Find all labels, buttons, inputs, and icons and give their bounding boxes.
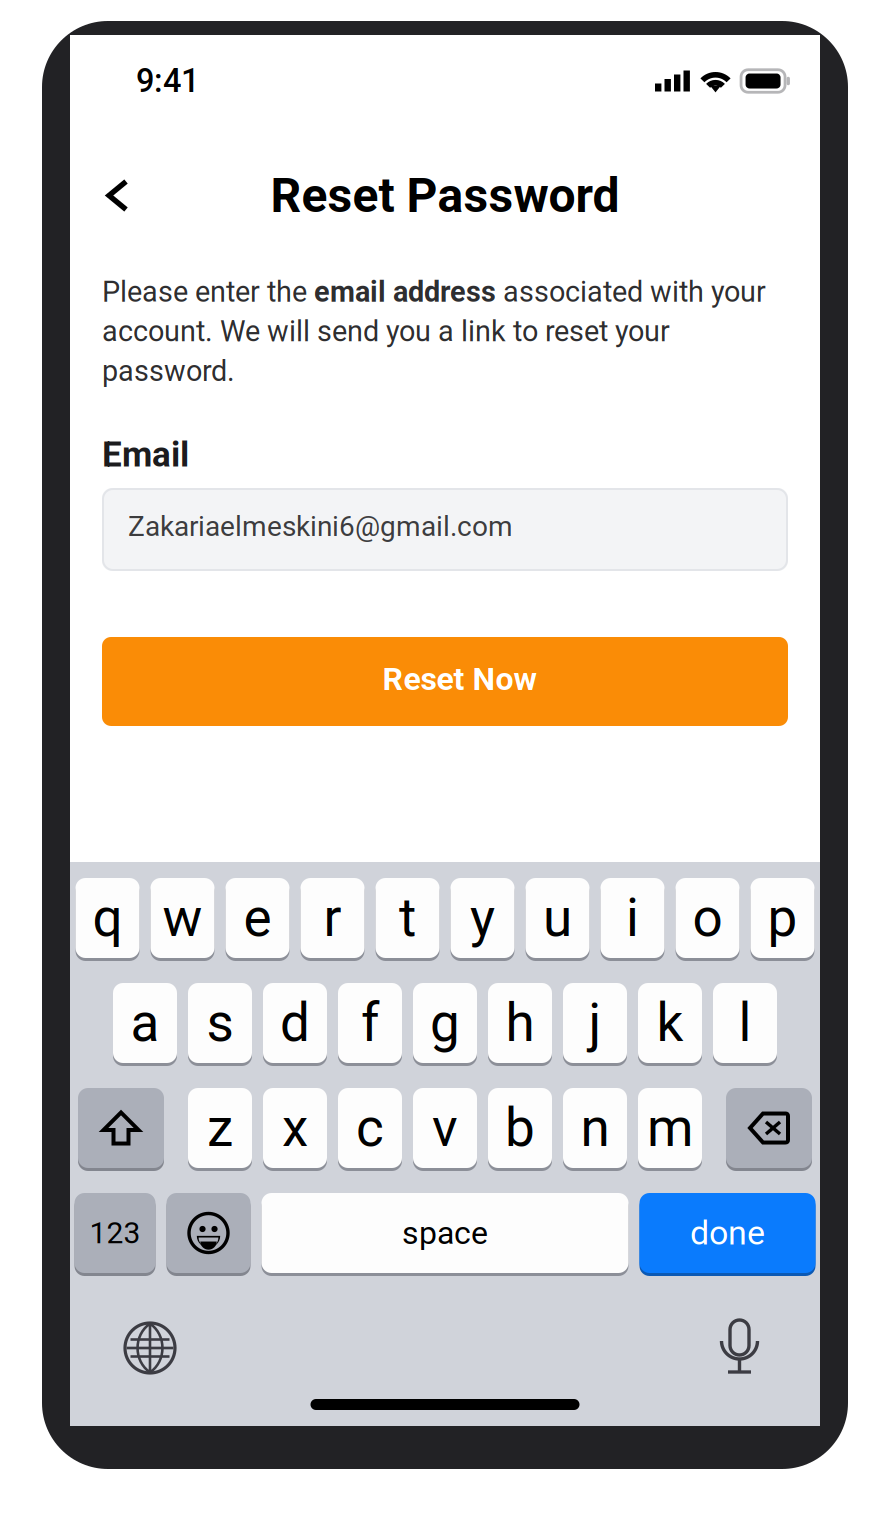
staticText: h [505, 992, 534, 1054]
button[interactable]: o [675, 878, 739, 961]
staticText: s [206, 992, 233, 1054]
staticText: k [656, 992, 683, 1054]
staticText: i [626, 887, 639, 949]
button[interactable]: u [525, 878, 589, 961]
staticText: l [738, 992, 751, 1054]
staticText: j [588, 992, 601, 1054]
staticText: b [505, 1097, 535, 1159]
staticText: y [470, 887, 495, 949]
staticText: Reset Password [270, 167, 619, 224]
staticText: z [207, 1097, 233, 1159]
button[interactable]: Back [70, 155, 151, 235]
staticText: Email [102, 434, 189, 475]
button[interactable]: j [563, 983, 627, 1066]
staticText: q [92, 887, 122, 949]
staticText: p [767, 887, 797, 949]
button[interactable]: h [488, 983, 552, 1066]
staticText: t [399, 887, 416, 949]
staticText: Please enter the email address associate… [102, 272, 766, 391]
button[interactable]: space [261, 1193, 628, 1276]
button[interactable]: b [488, 1088, 552, 1171]
staticText: m [647, 1097, 693, 1159]
staticText: done [690, 1213, 765, 1253]
staticText: w [162, 887, 202, 949]
button[interactable]: l [713, 983, 777, 1066]
button[interactable]: r [300, 878, 364, 961]
button[interactable]: Emoji keyboard [166, 1193, 250, 1276]
button[interactable]: i [600, 878, 664, 961]
button[interactable]: Reset Now [102, 637, 788, 726]
staticText: a [130, 992, 159, 1054]
button[interactable]: p [750, 878, 814, 961]
staticText: f [361, 992, 379, 1054]
staticText: n [580, 1097, 609, 1159]
button[interactable]: c [338, 1088, 402, 1171]
staticText: 123 [89, 1215, 140, 1251]
staticText: Reset Now [382, 660, 537, 698]
button[interactable]: k [638, 983, 702, 1066]
button[interactable]: m [638, 1088, 702, 1171]
button[interactable]: a [113, 983, 177, 1066]
staticText: g [430, 992, 460, 1054]
button[interactable]: v [413, 1088, 477, 1171]
button[interactable]: q [75, 878, 139, 961]
button[interactable]: f [338, 983, 402, 1066]
staticText: u [543, 887, 572, 949]
button[interactable]: s [188, 983, 252, 1066]
staticText: d [280, 992, 310, 1054]
staticText: 9:41 [136, 62, 199, 100]
staticText: space [402, 1214, 488, 1252]
button[interactable]: done [639, 1193, 815, 1276]
staticText: o [692, 887, 722, 949]
button[interactable]: z [188, 1088, 252, 1171]
button[interactable]: Delete [713, 1088, 812, 1171]
button[interactable]: Shift [78, 1088, 177, 1171]
staticText: e [243, 887, 271, 949]
button[interactable]: e [225, 878, 289, 961]
button[interactable]: Dictation [699, 1298, 820, 1380]
button[interactable]: y [450, 878, 514, 961]
button[interactable]: x [263, 1088, 327, 1171]
button[interactable]: d [263, 983, 327, 1066]
staticText: c [356, 1097, 384, 1159]
button[interactable]: n [563, 1088, 627, 1171]
button[interactable]: 123 [74, 1193, 155, 1276]
button[interactable]: w [150, 878, 214, 961]
button[interactable]: g [413, 983, 477, 1066]
staticText: r [323, 887, 341, 949]
staticText: x [282, 1097, 308, 1159]
staticText: v [432, 1097, 458, 1159]
staticText: Zakariaelmeskini6@gmail.com [128, 510, 513, 543]
button[interactable]: t [375, 878, 439, 961]
button[interactable]: Next keyboard [70, 1298, 197, 1380]
